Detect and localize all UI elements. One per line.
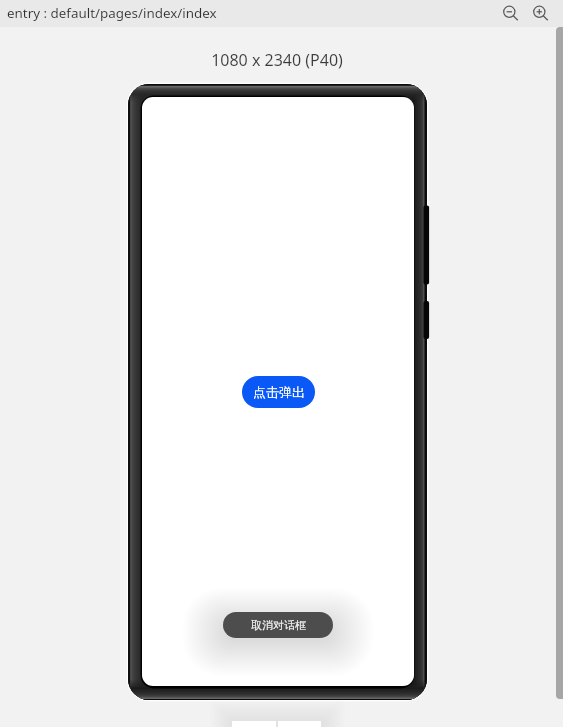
staticText: 点击弹出 [253,384,305,400]
button[interactable]: 取消对话框 [223,612,333,638]
staticText: entry : default/pages/index/index [7,4,217,22]
button[interactable]: Zoom in [532,5,549,22]
button[interactable]: 点击弹出 [242,376,315,408]
staticText: 取消对话框 [251,618,306,632]
button[interactable]: Zoom out [502,5,519,22]
staticText: 1080 x 2340 (P40) [211,49,343,71]
